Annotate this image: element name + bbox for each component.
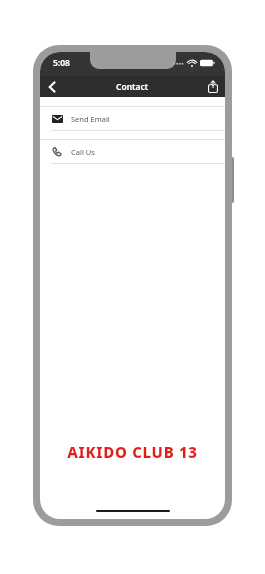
staticText: Call Us xyxy=(71,147,95,157)
button[interactable]: Share xyxy=(201,76,225,97)
staticText: Contact xyxy=(116,81,149,93)
button[interactable]: Call Us xyxy=(40,139,225,164)
staticText: Send Email xyxy=(71,114,110,124)
staticText: AIKIDO CLUB 13 xyxy=(67,442,198,462)
staticText: 5:08 xyxy=(53,57,70,69)
button[interactable]: Back xyxy=(40,76,64,97)
button[interactable]: Send Email xyxy=(40,106,225,131)
